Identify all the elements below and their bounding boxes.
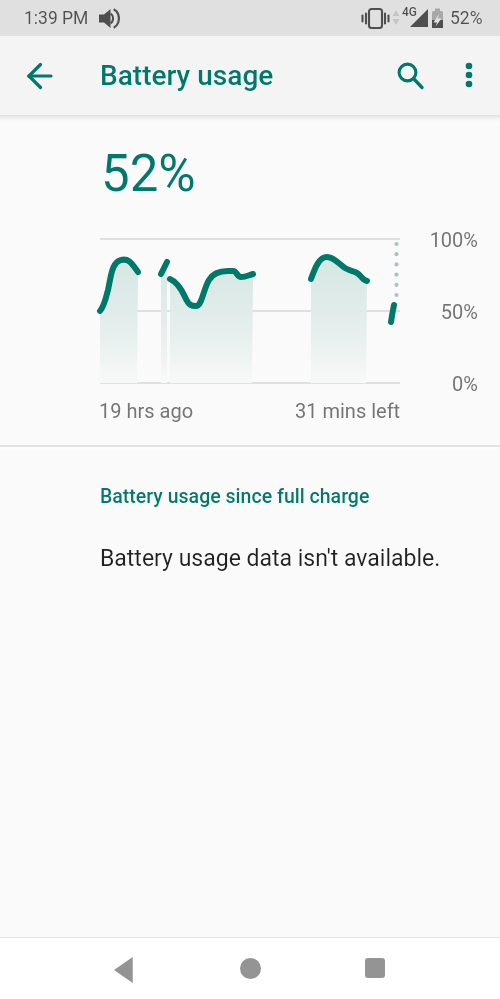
button[interactable]: Home [222, 940, 278, 996]
staticText: Battery usage [100, 59, 274, 92]
button[interactable]: Back [99, 942, 155, 998]
staticText: 0% [380, 372, 478, 395]
button[interactable]: Recent apps [347, 940, 403, 996]
staticText: 52% [450, 8, 483, 29]
staticText: 52% [101, 144, 196, 204]
staticText: 1:39 PM [24, 8, 89, 29]
staticText: 4G [402, 5, 417, 19]
staticText: 100% [380, 228, 478, 251]
button[interactable]: Search [387, 51, 435, 99]
button[interactable]: Back [16, 52, 64, 100]
staticText: 19 hrs ago [99, 399, 194, 422]
staticText: Battery usage since full charge [100, 485, 370, 508]
staticText: Battery usage data isn't available. [100, 545, 441, 572]
staticText: 50% [380, 300, 478, 323]
button[interactable]: More options [446, 51, 494, 99]
staticText: 31 mins left [295, 399, 401, 422]
